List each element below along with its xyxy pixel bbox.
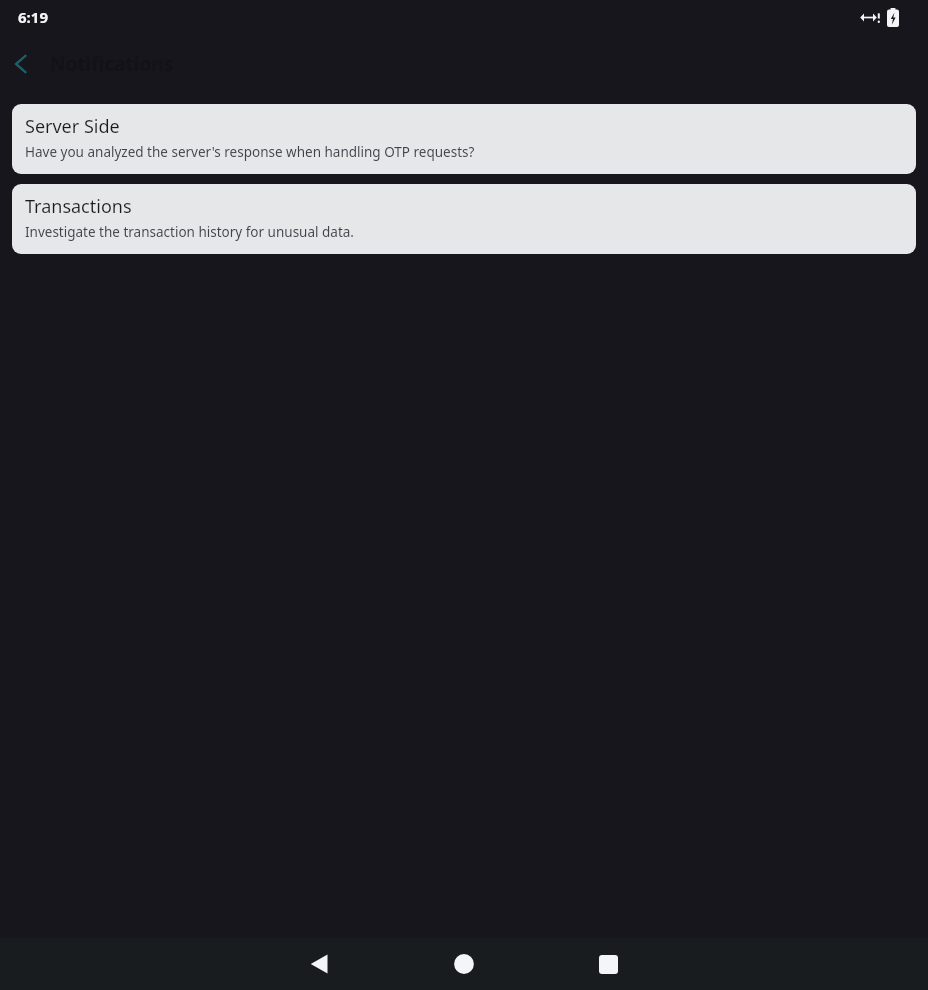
button[interactable]: Transactions: [12, 184, 916, 254]
button[interactable]: Server Side: [12, 104, 916, 174]
button[interactable]: Back: [248, 938, 392, 990]
button[interactable]: Recent apps: [536, 938, 680, 990]
staticText: Server Side: [25, 114, 120, 139]
staticText: 6:19: [18, 7, 48, 27]
staticText: Transactions: [25, 194, 132, 219]
button[interactable]: Home: [392, 938, 536, 990]
staticText: Investigate the transaction history for …: [25, 223, 354, 241]
staticText: Have you analyzed the server's response …: [25, 143, 475, 161]
button[interactable]: Back: [0, 43, 42, 85]
